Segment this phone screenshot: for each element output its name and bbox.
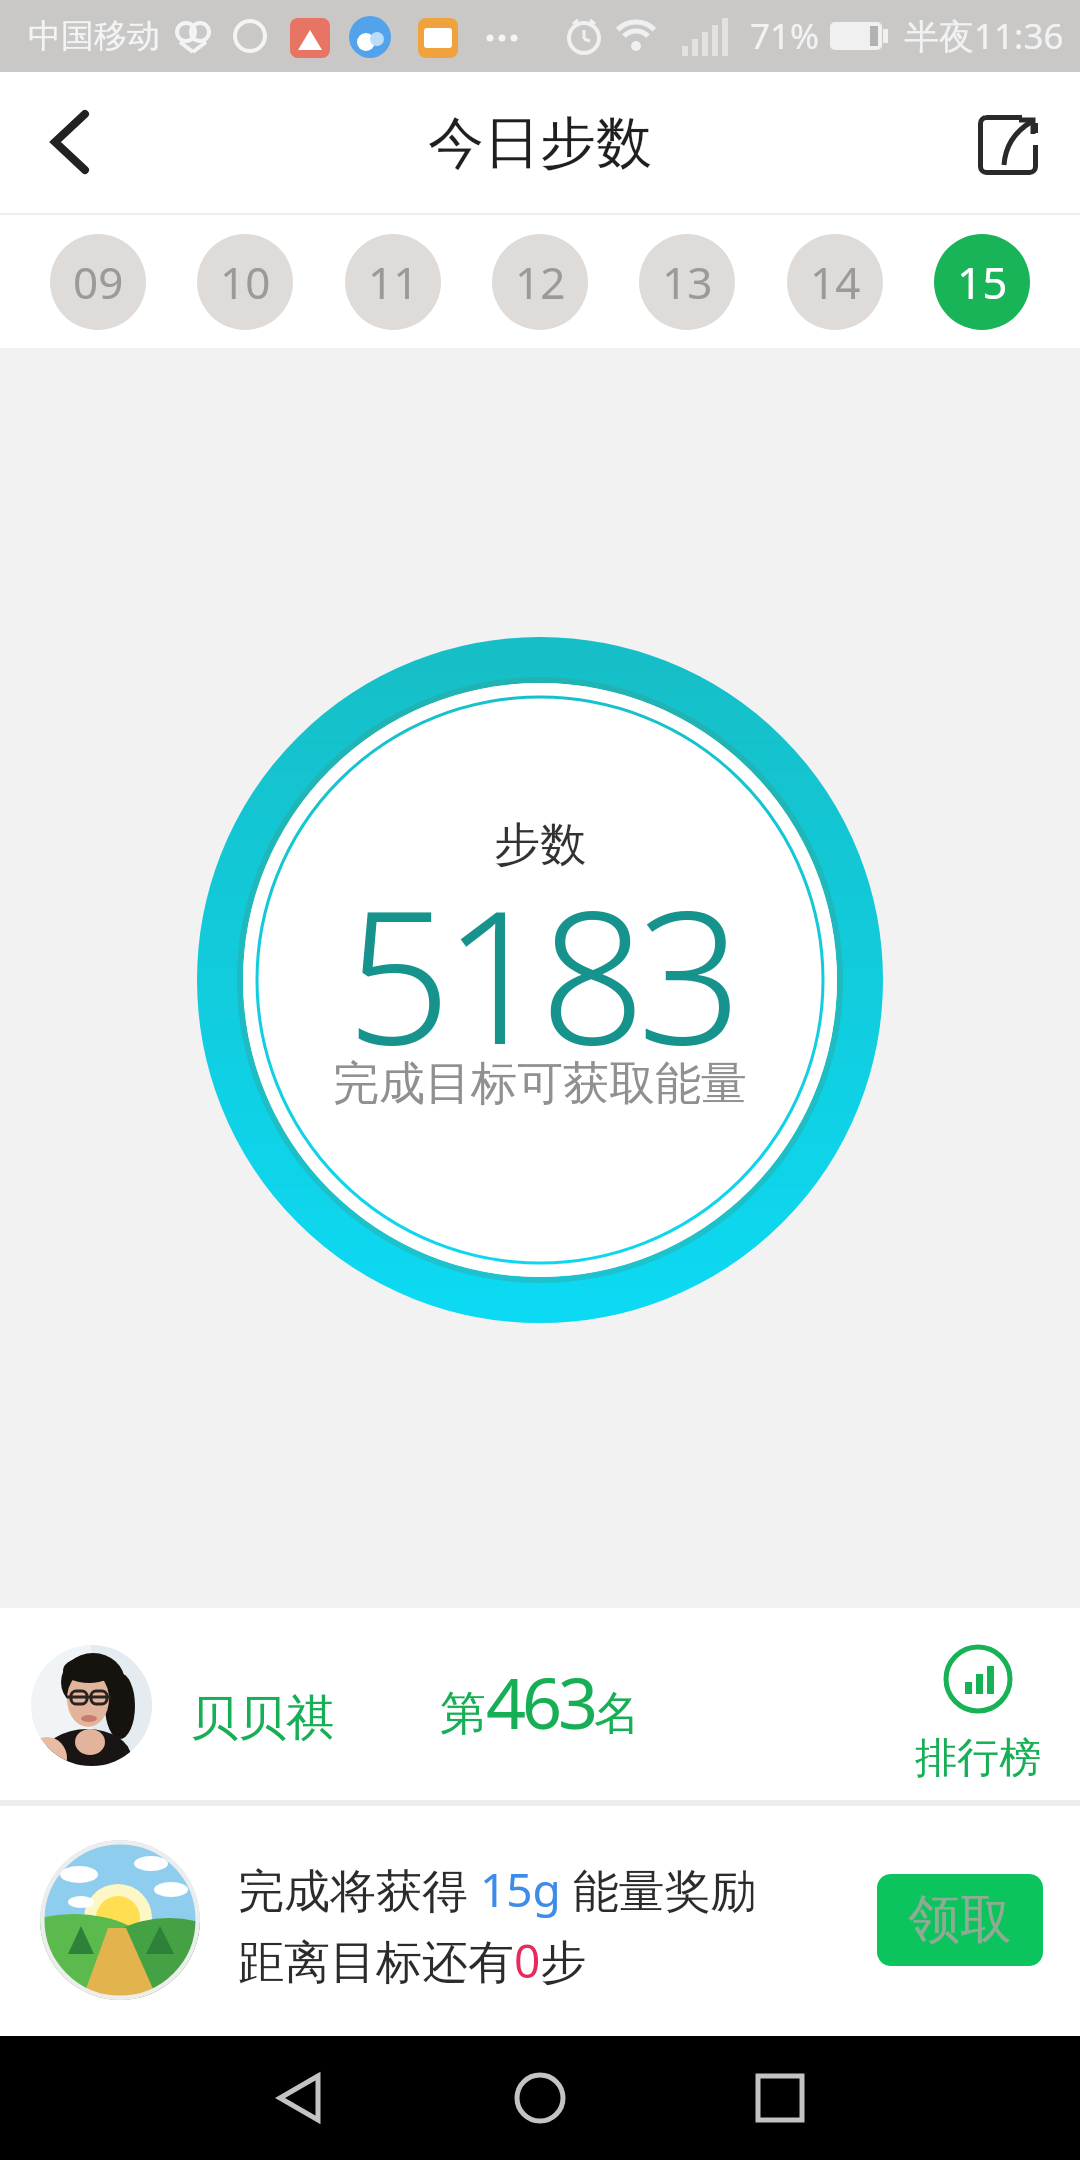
button[interactable]: 10 [197, 234, 293, 330]
staticText: 第463名 [440, 1654, 641, 1749]
button[interactable]: 11 [345, 234, 441, 330]
staticText: 距离目标还有0步 [238, 1929, 587, 1992]
button[interactable] [31, 1645, 152, 1766]
staticText: 10 [220, 252, 271, 312]
button[interactable]: 领取 [877, 1874, 1043, 1966]
button[interactable]: 09 [50, 234, 146, 330]
staticText: 领取 [908, 1887, 1012, 1953]
button[interactable]: 13 [639, 234, 735, 330]
staticText: 中国移动 [28, 15, 160, 57]
button[interactable] [730, 2048, 830, 2148]
staticText: 11 [368, 252, 419, 312]
staticText: 排行榜 [915, 1732, 1041, 1785]
staticText: 13 [662, 252, 713, 312]
button[interactable] [970, 107, 1046, 183]
staticText: 14 [810, 252, 861, 312]
button[interactable] [490, 2048, 590, 2148]
staticText: 12 [515, 252, 566, 312]
button[interactable] [40, 1840, 200, 2000]
staticText: 完成将获得 15g 能量奖励 [238, 1858, 757, 1921]
staticText: 完成目标可获取能量 [333, 1055, 747, 1113]
staticText: 步数 [494, 816, 586, 874]
button[interactable] [250, 2048, 350, 2148]
staticText: 71% [750, 12, 820, 60]
staticText: 半夜11:36 [904, 12, 1064, 60]
button[interactable]: 12 [492, 234, 588, 330]
staticText: 贝贝祺 [190, 1688, 334, 1748]
button[interactable]: 15 [934, 234, 1030, 330]
staticText: 今日步数 [428, 108, 652, 179]
staticText: 09 [73, 252, 124, 312]
button[interactable]: 14 [787, 234, 883, 330]
button[interactable]: 排行榜 [915, 1644, 1041, 1785]
button[interactable] [32, 104, 108, 180]
staticText: 5183 [346, 847, 735, 1098]
staticText: 15 [957, 252, 1008, 312]
